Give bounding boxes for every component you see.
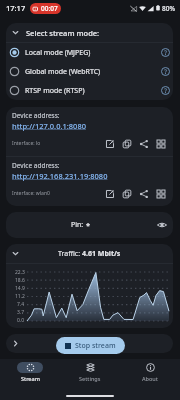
button[interactable]: Stop stream [56,337,125,354]
staticText: Select stream mode: [26,28,100,38]
staticText: Global mode (WebRTC) [25,67,101,77]
button[interactable]: Pin: [6,212,173,238]
staticText: 80% [162,4,175,13]
staticText: Interface: lo [12,140,41,147]
staticText: 22.3 [15,269,25,276]
button[interactable]: Help [161,48,170,57]
staticText: RTSP mode (RTSP) [25,86,85,96]
staticText: 4.61 Mbit/s [82,249,121,259]
staticText: Stop stream [75,341,116,351]
button[interactable]: Share [135,185,152,202]
button[interactable]: Global mode (WebRTC) [6,62,173,81]
button[interactable]: Copy address [118,135,135,152]
button[interactable]: Help [161,67,170,76]
button[interactable]: Show QR code [152,135,169,152]
staticText: 3.7 [17,309,25,316]
button[interactable]: Show pin [157,220,167,230]
staticText: 11.2 [15,293,25,300]
staticText: Device address: [12,161,60,170]
button[interactable]: Open in browser [101,185,118,202]
button[interactable]: About [120,359,180,384]
staticText: * [86,220,91,230]
staticText: 00:07 [41,4,58,13]
button[interactable]: Copy address [118,185,135,202]
staticText: 7.4 [17,301,25,308]
staticText: Traffic: [58,249,82,259]
staticText: Local mode (MJPEG) [25,48,91,58]
staticText: http://192.168.231.19:8080 [12,171,108,181]
staticText: 14.9 [15,285,25,292]
button[interactable] [6,334,173,353]
button[interactable]: Open in browser [101,135,118,152]
button[interactable]: Share [135,135,152,152]
button[interactable]: RTSP mode (RTSP) [6,81,173,100]
button[interactable]: Local mode (MJPEG) [6,43,173,62]
staticText: 18.6 [15,277,25,284]
button[interactable]: Stream [0,359,60,384]
button[interactable]: Settings [60,359,120,384]
button[interactable]: Show QR code [152,185,169,202]
staticText: http://127.0.0.1:8080 [12,121,86,131]
staticText: Device address: [12,111,60,120]
staticText: Pin: [71,220,86,230]
staticText: Settings [79,375,101,382]
staticText: Interface: wlan0 [12,190,50,197]
button[interactable]: Select stream mode: [6,23,173,42]
staticText: 0.0 [17,317,25,324]
staticText: About [142,375,158,382]
button[interactable]: Help [161,86,170,95]
button[interactable]: Traffic: [6,244,173,263]
staticText: Stream [21,375,40,382]
staticText: 17:17 [6,3,26,13]
